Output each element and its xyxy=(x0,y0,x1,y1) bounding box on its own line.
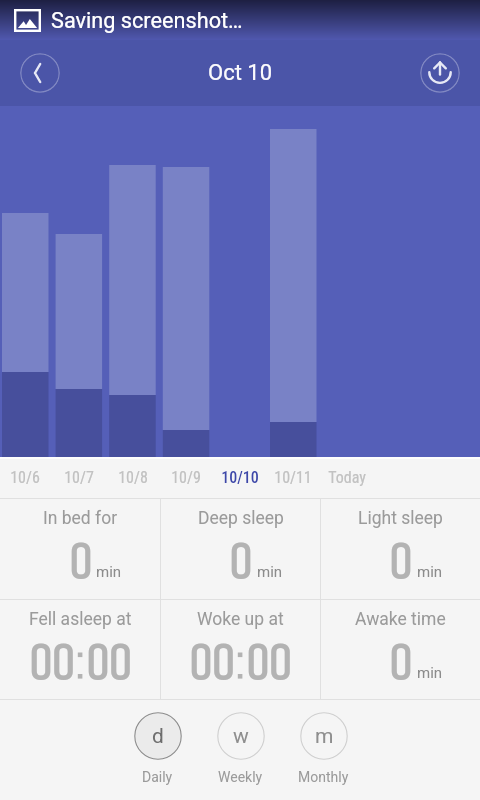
staticText: min xyxy=(417,563,443,581)
button[interactable]: Fell asleep at xyxy=(0,600,160,699)
button[interactable]: 10/8 xyxy=(106,457,160,498)
staticText: Daily xyxy=(142,769,173,785)
button[interactable]: d xyxy=(116,703,199,785)
staticText: In bed for xyxy=(43,508,118,529)
button[interactable]: Today xyxy=(320,457,374,498)
staticText: 10/10 xyxy=(221,468,259,487)
staticText: Deep sleep xyxy=(198,508,284,529)
button[interactable]: In bed for xyxy=(0,499,160,599)
staticText: 0 xyxy=(69,523,92,604)
button[interactable]: Light sleep xyxy=(321,499,480,599)
staticText: 00 xyxy=(86,624,132,705)
button[interactable]: Back xyxy=(20,53,60,93)
staticText: min xyxy=(96,563,122,581)
button[interactable]: Awake time xyxy=(321,600,480,699)
staticText: 0 xyxy=(229,523,252,604)
staticText: Weekly xyxy=(218,769,263,785)
staticText: Today xyxy=(328,468,366,487)
staticText: 10/6 xyxy=(10,468,40,487)
staticText: m xyxy=(315,724,334,749)
button[interactable]: Woke up at xyxy=(161,600,320,699)
staticText: Woke up at xyxy=(197,609,284,630)
button[interactable]: Share xyxy=(420,53,460,93)
button[interactable]: Deep sleep xyxy=(161,499,320,599)
staticText: w xyxy=(233,724,249,749)
staticText: Light sleep xyxy=(358,508,443,529)
staticText: 10/11 xyxy=(274,468,312,487)
staticText: 00 xyxy=(29,624,75,705)
staticText: Oct 10 xyxy=(208,60,273,86)
staticText: 00 xyxy=(246,624,292,705)
staticText: 10/8 xyxy=(118,468,148,487)
button[interactable]: 10/11 xyxy=(266,457,320,498)
staticText: min xyxy=(257,563,283,581)
staticText: 10/7 xyxy=(64,468,94,487)
button[interactable]: 10/7 xyxy=(52,457,106,498)
staticText: Awake time xyxy=(355,609,446,630)
button[interactable]: 10/9 xyxy=(159,457,213,498)
staticText: 10/9 xyxy=(171,468,201,487)
staticText: 00 xyxy=(189,624,235,705)
button[interactable]: 10/6 xyxy=(0,457,52,498)
button[interactable]: 10/10 xyxy=(213,457,267,498)
button[interactable]: m xyxy=(282,703,365,785)
staticText: min xyxy=(417,664,443,682)
button[interactable]: w xyxy=(199,703,282,785)
staticText: Saving screenshot… xyxy=(51,8,243,33)
staticText: Monthly xyxy=(298,769,349,785)
staticText: d xyxy=(152,724,164,749)
staticText: Fell asleep at xyxy=(29,609,132,630)
staticText: 0 xyxy=(389,523,412,604)
staticText: 0 xyxy=(389,624,412,705)
